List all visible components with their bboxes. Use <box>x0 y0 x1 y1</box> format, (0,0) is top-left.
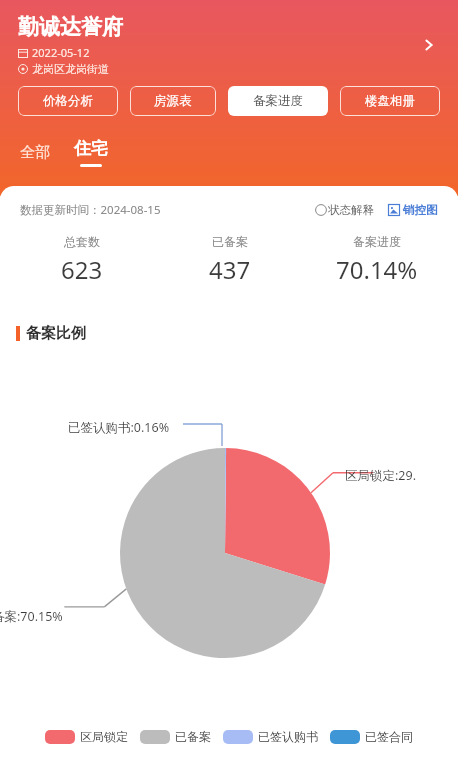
staticText: 已签认购书 <box>258 729 318 744</box>
button[interactable]: 备案进度 <box>228 86 328 116</box>
staticText: 房源表 <box>154 93 192 109</box>
staticText: 备案进度 <box>353 234 401 249</box>
staticText: 2022-05-12 <box>32 45 90 60</box>
staticText: 楼盘相册 <box>365 93 415 109</box>
button[interactable]: 全部 <box>18 143 52 162</box>
staticText: 备案进度 <box>253 93 303 109</box>
staticText: 已备案 <box>175 729 211 744</box>
staticText: 已签合同 <box>365 729 413 744</box>
staticText: 已备案 <box>212 234 248 249</box>
staticText: 状态解释 <box>328 203 374 217</box>
staticText: 备案比例 <box>26 324 86 343</box>
button[interactable]: 已签认购书 <box>223 729 318 744</box>
staticText: 数据更新时间：2024-08-15 <box>20 202 161 218</box>
staticText: 价格分析 <box>43 93 93 109</box>
button[interactable]: 住宅 <box>74 138 108 167</box>
staticText: 区局锁定:29. <box>345 467 417 484</box>
staticText: 区局锁定 <box>80 729 128 744</box>
staticText: 勤诚达誉府 <box>18 14 123 40</box>
button[interactable]: 已签合同 <box>330 729 413 744</box>
button[interactable]: 价格分析 <box>18 86 118 116</box>
staticText: 70.14% <box>336 253 418 286</box>
staticText: 住宅 <box>74 138 108 159</box>
button[interactable]: 楼盘相册 <box>340 86 440 116</box>
button[interactable]: 状态解释 <box>315 203 374 217</box>
button[interactable]: 区局锁定 <box>45 729 128 744</box>
staticText: 已签认购书:0.16% <box>68 419 170 436</box>
button[interactable]: 已备案 <box>140 729 211 744</box>
staticText: 备案:70.15% <box>0 608 63 625</box>
button[interactable]: 销控图 <box>388 203 438 217</box>
staticText: 全部 <box>20 143 50 162</box>
staticText: 销控图 <box>403 203 438 217</box>
staticText: 437 <box>209 253 251 286</box>
button[interactable]: More <box>414 30 444 60</box>
button[interactable]: 房源表 <box>130 86 216 116</box>
staticText: 623 <box>61 253 103 286</box>
staticText: 总套数 <box>64 234 100 249</box>
staticText: 龙岗区龙岗街道 <box>32 62 109 76</box>
